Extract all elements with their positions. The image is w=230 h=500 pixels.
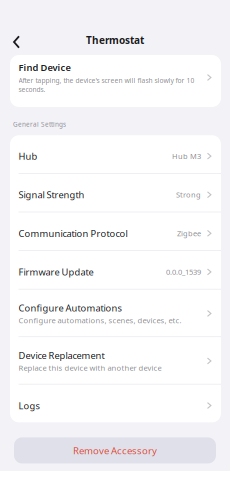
staticText: Hub M3 xyxy=(172,151,201,161)
button[interactable]: Logs xyxy=(10,385,221,422)
staticText: Configure automations, scenes, devices, … xyxy=(18,315,181,325)
staticText: Signal Strength xyxy=(18,188,84,201)
button[interactable]: Device Replacement xyxy=(10,337,221,384)
staticText: 0.0.0_1539 xyxy=(166,267,201,277)
button[interactable]: Hub xyxy=(10,135,221,173)
staticText: Communication Protocol xyxy=(18,227,127,240)
button[interactable]: Remove Accessory xyxy=(14,437,216,463)
staticText: Replace this device with another device xyxy=(18,363,161,373)
button[interactable]: Communication Protocol xyxy=(10,212,221,250)
button[interactable]: Configure Automations xyxy=(10,290,221,336)
staticText: General Settings xyxy=(13,120,66,129)
staticText: Configure Automations xyxy=(18,301,121,314)
staticText: Remove Accessory xyxy=(73,444,157,457)
staticText: Thermostat xyxy=(86,33,144,47)
staticText: Device Replacement xyxy=(18,349,104,362)
button[interactable]: Signal Strength xyxy=(10,174,221,212)
button[interactable]: Find Device xyxy=(10,55,221,107)
button[interactable]: Back xyxy=(0,26,31,54)
staticText: Find Device xyxy=(18,61,70,74)
staticText: Hub xyxy=(18,150,37,162)
staticText: After tapping, the device's screen will … xyxy=(18,76,194,94)
staticText: Firmware Update xyxy=(18,266,93,278)
staticText: Strong xyxy=(176,190,201,200)
button[interactable]: Firmware Update xyxy=(10,251,221,289)
staticText: Logs xyxy=(18,399,39,412)
staticText: Zigbee xyxy=(177,228,201,238)
